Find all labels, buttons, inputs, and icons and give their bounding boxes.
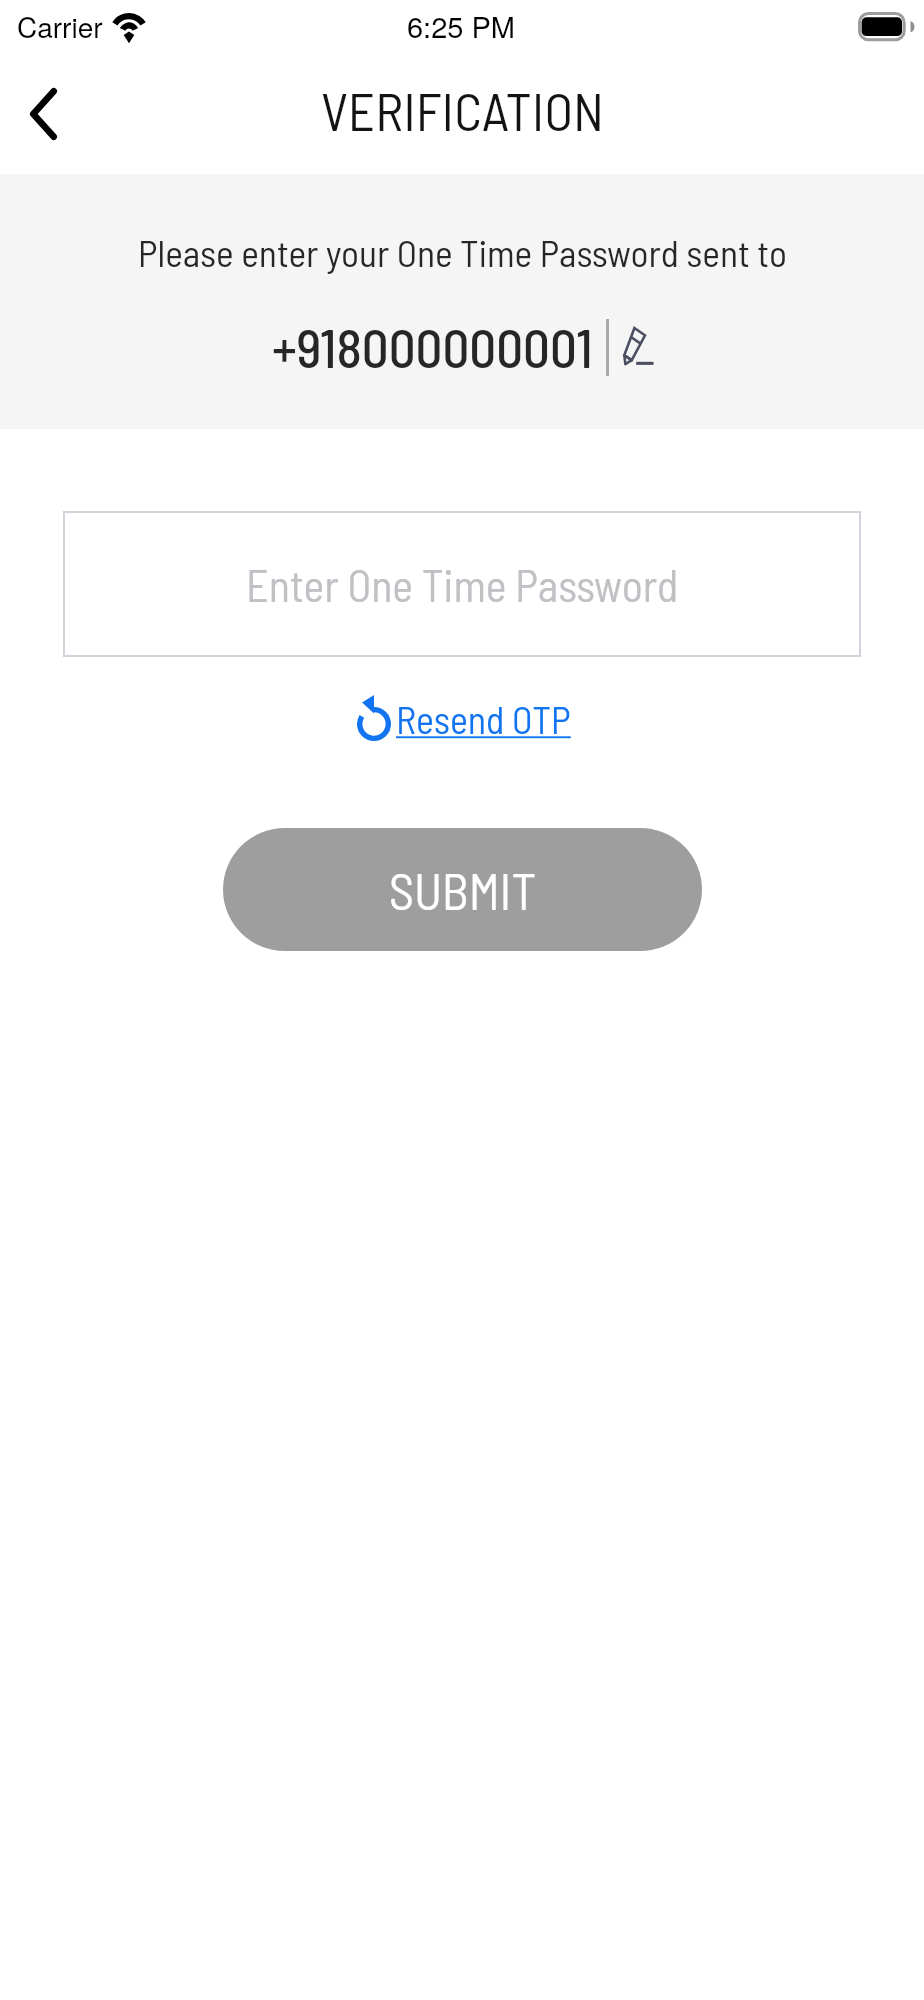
staticText: VERIFICATION (321, 78, 604, 142)
staticText: Resend OTP (396, 696, 571, 742)
staticText: 6:25 PM (407, 5, 515, 47)
staticText: Enter One Time Password (246, 558, 679, 611)
button[interactable]: Resend OTP (353, 698, 571, 744)
staticText: Carrier (17, 6, 103, 46)
staticText: Please enter your One Time Password sent… (138, 229, 787, 274)
button[interactable]: Back (0, 60, 90, 174)
staticText: SUBMIT (389, 860, 537, 920)
button[interactable]: SUBMIT (223, 828, 702, 951)
button[interactable]: Edit phone number (620, 322, 660, 372)
staticText: +918000000001 (272, 315, 593, 379)
button[interactable]: Enter One Time Password (63, 511, 861, 657)
